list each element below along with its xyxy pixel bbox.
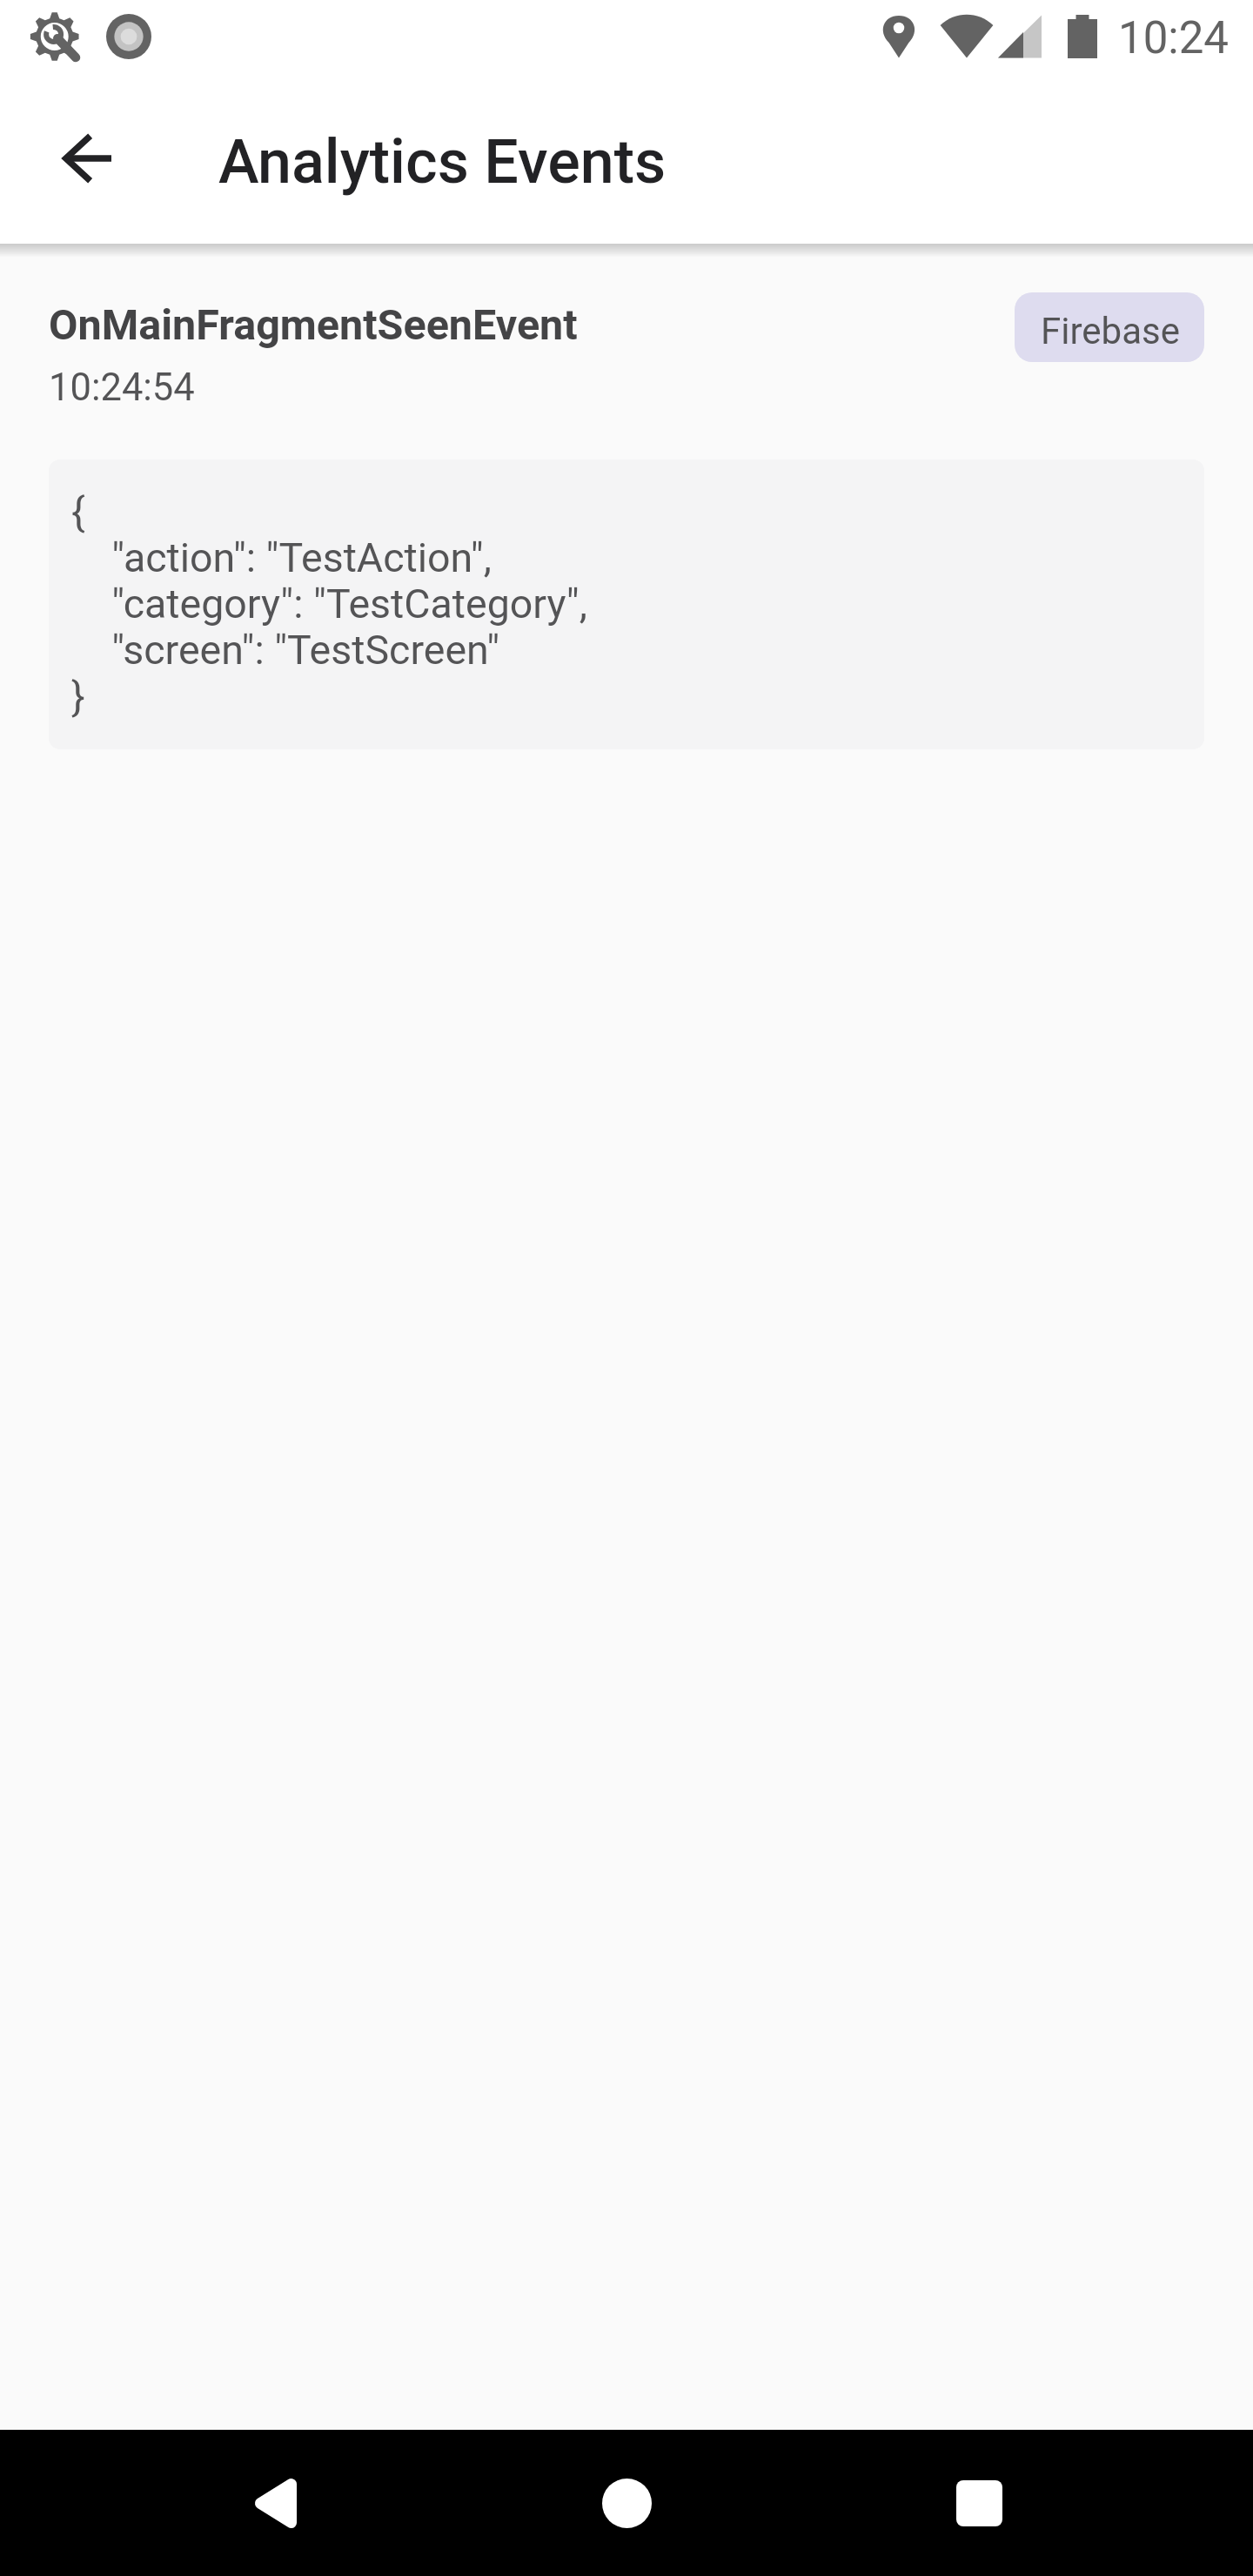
staticText: 10:24 xyxy=(1118,12,1230,64)
button[interactable]: Navigate up xyxy=(38,110,136,207)
staticText: { "action": "TestAction", "category": "T… xyxy=(71,488,587,721)
button[interactable]: Firebase xyxy=(1015,292,1204,362)
staticText: Firebase xyxy=(1041,310,1180,352)
staticText: OnMainFragmentSeenEvent xyxy=(49,300,1015,350)
staticText: Analytics Events xyxy=(218,126,667,198)
button[interactable]: OnMainFragmentSeenEvent xyxy=(0,258,1253,767)
staticText: 10:24:54 xyxy=(49,366,195,410)
button[interactable]: Home xyxy=(553,2430,700,2576)
button[interactable]: Recent apps xyxy=(906,2430,1052,2576)
button[interactable]: Back xyxy=(202,2430,348,2576)
